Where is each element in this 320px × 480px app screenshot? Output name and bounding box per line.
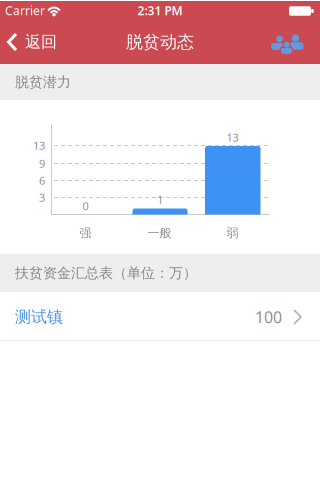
staticText: 测试镇 (15, 307, 63, 327)
staticText: 9 (39, 156, 45, 171)
staticText: 13 (226, 130, 238, 145)
staticText: 0 (82, 198, 88, 213)
staticText: 100 (255, 306, 282, 328)
button[interactable]: 返回 (0, 20, 57, 64)
staticText: 脱贫潜力 (15, 73, 71, 91)
staticText: 弱 (226, 225, 238, 240)
button[interactable]: 联系人 (270, 20, 320, 64)
staticText: Carrier (5, 2, 45, 19)
staticText: 一般 (147, 225, 171, 240)
staticText: 13 (33, 138, 45, 153)
button[interactable]: 测试镇 (0, 292, 320, 340)
staticText: 1 (157, 192, 163, 207)
staticText: 返回 (25, 32, 57, 52)
staticText: 强 (79, 225, 91, 240)
staticText: 6 (39, 173, 45, 188)
staticText: 脱贫动态 (126, 31, 194, 53)
staticText: 扶贫资金汇总表（单位：万） (15, 264, 197, 282)
staticText: 2:31 PM (137, 2, 182, 19)
staticText: 3 (39, 190, 45, 205)
